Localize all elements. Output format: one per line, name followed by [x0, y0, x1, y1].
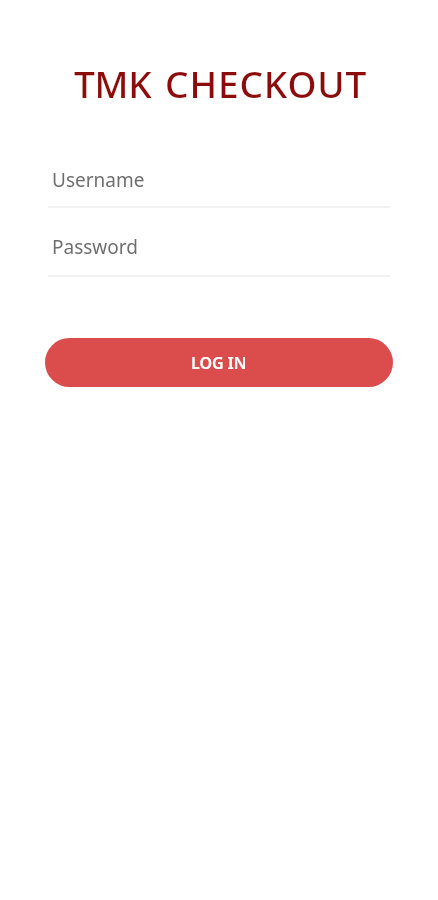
staticText: CHECKOUT	[165, 58, 368, 108]
staticText: TMK	[74, 58, 152, 108]
staticText: Password	[52, 234, 138, 260]
staticText: LOG IN	[191, 352, 247, 374]
staticText: Username	[52, 167, 145, 193]
button[interactable]: LOG IN	[45, 338, 393, 387]
button[interactable]: Username	[48, 152, 390, 208]
button[interactable]: Password	[48, 221, 390, 277]
